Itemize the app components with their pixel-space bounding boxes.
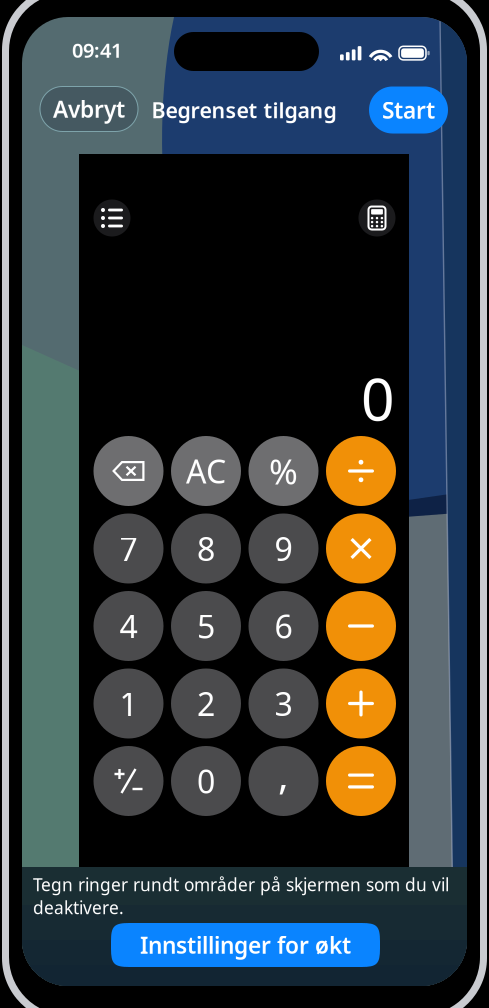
staticText: 1 <box>119 682 137 725</box>
button[interactable]: Subtract <box>326 591 396 661</box>
button[interactable]: Equals <box>326 746 396 816</box>
button[interactable]: Calculator mode <box>358 199 395 236</box>
staticText: 6 <box>274 605 292 647</box>
staticText: 0 <box>197 760 215 802</box>
button[interactable]: History <box>93 199 130 236</box>
button[interactable]: , <box>248 746 318 816</box>
button[interactable]: 4 <box>93 591 163 661</box>
staticText: , <box>278 747 289 800</box>
button[interactable]: % <box>248 436 318 506</box>
staticText: Innstillinger for økt <box>140 930 351 960</box>
staticText: 8 <box>197 527 215 570</box>
staticText: 2 <box>197 682 215 725</box>
button[interactable]: Multiply <box>326 513 396 583</box>
staticText: 7 <box>119 527 137 570</box>
button[interactable]: 6 <box>248 591 318 661</box>
button[interactable]: Divide <box>326 436 396 506</box>
button[interactable]: Plus minus <box>93 746 163 816</box>
button[interactable]: Innstillinger for økt <box>111 923 380 967</box>
button[interactable]: Add <box>326 668 396 738</box>
staticText: Avbryt <box>53 94 125 124</box>
staticText: 09:41 <box>72 37 122 63</box>
staticText: 3 <box>274 682 292 725</box>
staticText: 4 <box>119 605 137 647</box>
staticText: % <box>269 448 298 494</box>
button[interactable]: Start <box>369 86 448 133</box>
staticText: 5 <box>197 605 215 647</box>
staticText: Begrenset tilgang <box>151 96 336 124</box>
button[interactable]: 8 <box>171 513 241 583</box>
staticText: 9 <box>274 527 292 570</box>
staticText: Tegn ringer rundt områder på skjermen so… <box>33 873 449 919</box>
button[interactable]: Avbryt <box>40 86 138 131</box>
staticText: AC <box>186 450 226 492</box>
button[interactable]: 9 <box>248 513 318 583</box>
staticText: 0 <box>361 359 395 437</box>
button[interactable]: 7 <box>93 513 163 583</box>
button[interactable]: 2 <box>171 668 241 738</box>
button[interactable]: 1 <box>93 668 163 738</box>
staticText: Start <box>382 95 435 125</box>
button[interactable]: AC <box>171 436 241 506</box>
button[interactable]: 3 <box>248 668 318 738</box>
button[interactable]: 0 <box>171 746 241 816</box>
button[interactable]: 5 <box>171 591 241 661</box>
button[interactable]: Delete <box>93 436 163 506</box>
